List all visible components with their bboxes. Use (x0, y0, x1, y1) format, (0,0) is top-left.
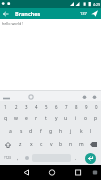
staticText: k (80, 128, 83, 135)
button[interactable] (22, 151, 32, 165)
button[interactable]: 4 (31, 101, 41, 112)
button[interactable]: d (26, 125, 36, 138)
button[interactable] (0, 138, 15, 151)
button[interactable]: h (56, 125, 66, 138)
button[interactable]: 9 (81, 101, 91, 112)
staticText: ?123 (4, 156, 11, 160)
button[interactable] (86, 138, 101, 151)
button[interactable]: n (66, 138, 76, 151)
button[interactable]: r (31, 112, 41, 125)
staticText: r (35, 115, 38, 122)
button[interactable]: q (0, 112, 11, 125)
staticText: s (20, 128, 23, 135)
button[interactable]: 1 (0, 101, 11, 112)
button[interactable]: f (36, 125, 46, 138)
staticText: c (40, 141, 43, 148)
button[interactable]: o (81, 112, 91, 125)
button[interactable]: 6 (51, 101, 61, 112)
staticText: f (40, 128, 42, 135)
staticText: w (14, 115, 18, 122)
button[interactable]: 7 (61, 101, 71, 112)
staticText: 1 (4, 104, 7, 110)
button[interactable]: p (91, 112, 101, 125)
button[interactable]: . (71, 151, 80, 165)
staticText: 4 (35, 104, 38, 110)
button[interactable]: b (56, 138, 66, 151)
button[interactable]: 5 (41, 101, 51, 112)
staticText: g (49, 128, 53, 135)
button[interactable]: , (14, 151, 22, 165)
button[interactable]: k (76, 125, 86, 138)
button[interactable]: j (66, 125, 76, 138)
button[interactable]: i (71, 112, 81, 125)
button[interactable]: t (41, 112, 51, 125)
button[interactable]: l (86, 125, 96, 138)
staticText: h (59, 128, 63, 135)
button[interactable]: ?123 (0, 151, 14, 165)
staticText: b (59, 141, 63, 148)
staticText: j (70, 128, 72, 135)
button[interactable] (87, 8, 101, 19)
button[interactable]: x (26, 138, 36, 151)
staticText: 9 (85, 104, 88, 110)
staticText: m (79, 141, 84, 148)
button[interactable] (80, 151, 101, 165)
staticText: u (64, 115, 68, 122)
staticText: 3 (25, 104, 28, 110)
staticText: n (69, 141, 73, 148)
button[interactable] (67, 165, 101, 180)
staticText: t (45, 115, 47, 122)
staticText: i (75, 115, 77, 122)
button[interactable]: a (5, 125, 16, 138)
staticText: a (9, 128, 12, 135)
staticText: z (19, 141, 22, 148)
button[interactable]: 2 (11, 101, 21, 112)
staticText: 7 (65, 104, 68, 110)
staticText: hello world ! (2, 21, 24, 26)
button[interactable]: u (61, 112, 71, 125)
button[interactable]: e (21, 112, 31, 125)
staticText: x (30, 141, 33, 148)
staticText: 4:29 (93, 2, 100, 7)
staticText: v (50, 141, 53, 148)
button[interactable]: 3 (21, 101, 31, 112)
staticText: , (17, 155, 19, 162)
button[interactable]: m (76, 138, 86, 151)
staticText: y (55, 115, 58, 122)
staticText: Branches (15, 10, 41, 17)
button[interactable] (0, 165, 33, 180)
button[interactable] (0, 8, 12, 19)
staticText: 137 (80, 11, 87, 16)
staticText: e (25, 115, 28, 122)
staticText: 6 (55, 104, 58, 110)
staticText: 0 (95, 104, 98, 110)
button[interactable]: 0 (91, 101, 101, 112)
button[interactable]: z (15, 138, 26, 151)
button[interactable]: g (46, 125, 56, 138)
button[interactable] (33, 165, 67, 180)
staticText: 2 (15, 104, 18, 110)
staticText: q (4, 115, 8, 122)
staticText: 5 (45, 104, 48, 110)
button[interactable]: c (36, 138, 46, 151)
staticText: o (84, 115, 88, 122)
staticText: 8 (75, 104, 78, 110)
button[interactable]: w (11, 112, 21, 125)
button[interactable]: s (16, 125, 26, 138)
staticText: d (29, 128, 33, 135)
staticText: l (90, 128, 92, 135)
staticText: . (75, 155, 77, 162)
button[interactable]: v (46, 138, 56, 151)
button[interactable]: 8 (71, 101, 81, 112)
button[interactable]: y (51, 112, 61, 125)
staticText: p (94, 115, 98, 122)
